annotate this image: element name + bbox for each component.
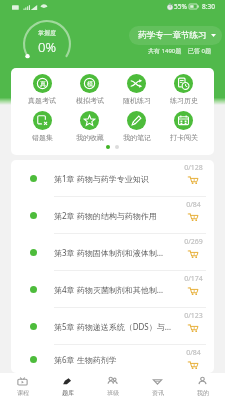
- staticText: 0%: [38, 38, 56, 56]
- staticText: 0/123: [184, 311, 203, 321]
- staticText: 我的收藏: [76, 133, 104, 142]
- staticText: 错题集: [32, 133, 53, 142]
- staticText: 我的笔记: [123, 133, 151, 142]
- staticText: 资讯: [152, 389, 164, 397]
- staticText: 班级: [107, 389, 119, 397]
- button[interactable]: 真: [18, 74, 66, 105]
- button[interactable]: 错题集: [18, 111, 66, 142]
- staticText: 药学专一章节练习: [138, 30, 207, 41]
- staticText: 第2章 药物的结构与药物作用: [54, 210, 157, 221]
- staticText: 第4章 药物灭菌制剂和其他制…: [54, 284, 163, 295]
- staticText: 掌握度: [38, 29, 56, 37]
- button[interactable]: 第1章 药物与药学专业知识: [11, 160, 214, 197]
- staticText: 0/128: [184, 163, 203, 173]
- staticText: 模拟考试: [76, 96, 104, 105]
- staticText: 真题考试: [28, 96, 56, 105]
- button[interactable]: 班级: [90, 373, 135, 400]
- staticText: 题库: [62, 389, 74, 397]
- button[interactable]: 我的笔记: [113, 111, 160, 142]
- staticText: 共有 1490题: [148, 47, 182, 55]
- button[interactable]: 模: [66, 74, 113, 105]
- staticText: 0/269: [184, 237, 203, 247]
- staticText: ⏱55%: [166, 2, 187, 11]
- button[interactable]: 练习历史: [160, 74, 207, 105]
- staticText: 课程: [17, 389, 29, 397]
- staticText: 0/84: [186, 200, 201, 210]
- button[interactable]: 第3章 药物固体制剂和液体制…: [11, 234, 214, 271]
- staticText: 随机练习: [123, 96, 151, 105]
- button[interactable]: 资讯: [135, 373, 180, 400]
- button[interactable]: 第6章 生物药剂学: [11, 345, 214, 373]
- button[interactable]: 题库: [45, 373, 90, 400]
- staticText: 已答 0题: [188, 47, 211, 55]
- staticText: 练习历史: [170, 96, 198, 105]
- staticText: 真: [40, 80, 46, 88]
- staticText: 0/174: [184, 274, 203, 284]
- staticText: 第6章 生物药剂学: [54, 354, 117, 365]
- staticText: 第1章 药物与药学专业知识: [54, 173, 149, 184]
- button[interactable]: 我的收藏: [66, 111, 113, 142]
- staticText: 0/84: [186, 348, 201, 358]
- button[interactable]: 第5章 药物递送系统（DDS）与…: [11, 308, 214, 345]
- button[interactable]: 第2章 药物的结构与药物作用: [11, 197, 214, 234]
- staticText: 我的: [197, 389, 209, 397]
- button[interactable]: 随机练习: [113, 74, 160, 105]
- staticText: 打卡闯关: [170, 133, 198, 142]
- staticText: 第5章 药物递送系统（DDS）与…: [54, 321, 172, 332]
- staticText: 第3章 药物固体制剂和液体制…: [54, 247, 163, 258]
- button[interactable]: 打卡闯关: [160, 111, 207, 142]
- button[interactable]: 第4章 药物灭菌制剂和其他制…: [11, 271, 214, 308]
- staticText: 8:30: [202, 2, 215, 11]
- button[interactable]: 我的: [180, 373, 225, 400]
- button[interactable]: 课程: [0, 373, 45, 400]
- staticText: 模: [87, 80, 93, 88]
- button[interactable]: 药学专一章节练习: [129, 26, 222, 45]
